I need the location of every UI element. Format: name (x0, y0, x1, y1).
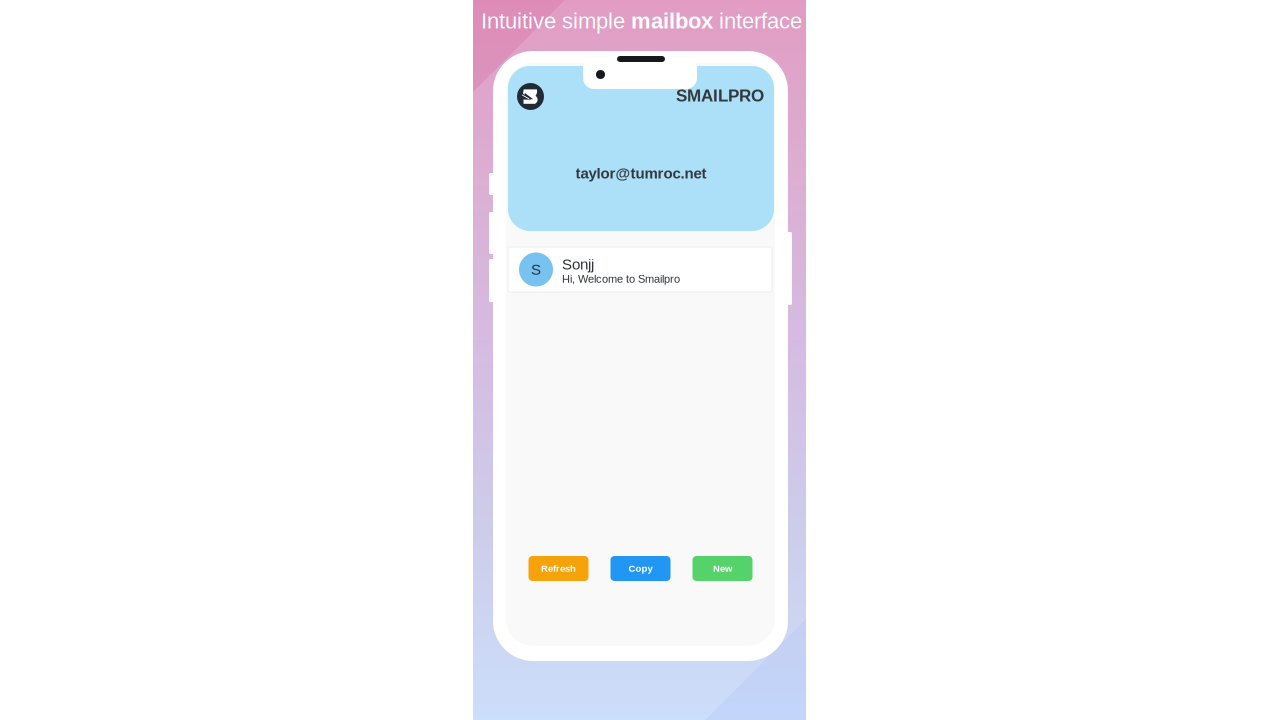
staticText: Copy (628, 563, 652, 574)
staticText: New (713, 563, 732, 574)
staticText: S (531, 261, 541, 278)
button[interactable]: Refresh (528, 556, 588, 581)
button[interactable]: SmailPro (517, 83, 544, 110)
staticText: Sonjj (562, 256, 594, 273)
staticText: Hi, Welcome to Smailpro (562, 273, 680, 285)
button[interactable]: New (692, 556, 752, 581)
button[interactable]: S (508, 247, 772, 292)
staticText: SMAILPRO (676, 86, 764, 105)
staticText: taylor@tumroc.net (575, 165, 706, 182)
staticText: Intuitive simple mailbox interface (481, 9, 802, 33)
staticText: Refresh (541, 563, 576, 574)
button[interactable]: Copy (610, 556, 670, 581)
